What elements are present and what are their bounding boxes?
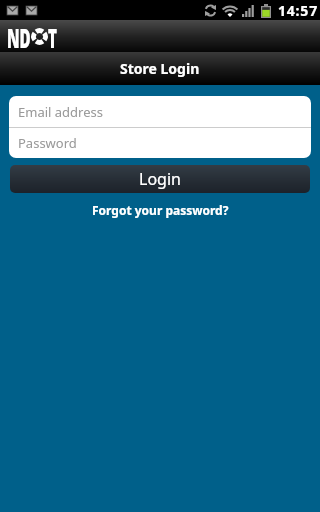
staticText: Login xyxy=(139,168,181,190)
staticText: ND xyxy=(7,20,31,52)
button[interactable]: Login xyxy=(10,165,310,193)
staticText: 14:57 xyxy=(278,1,318,20)
staticText: Store Login xyxy=(120,59,200,78)
button[interactable]: Email address xyxy=(9,96,311,127)
staticText: Forgot your password? xyxy=(92,202,229,218)
button[interactable]: Forgot your password? xyxy=(0,202,320,218)
staticText: Email address xyxy=(18,103,103,121)
button[interactable]: Password xyxy=(9,128,311,158)
staticText: T xyxy=(48,20,57,52)
staticText: Password xyxy=(18,134,77,152)
